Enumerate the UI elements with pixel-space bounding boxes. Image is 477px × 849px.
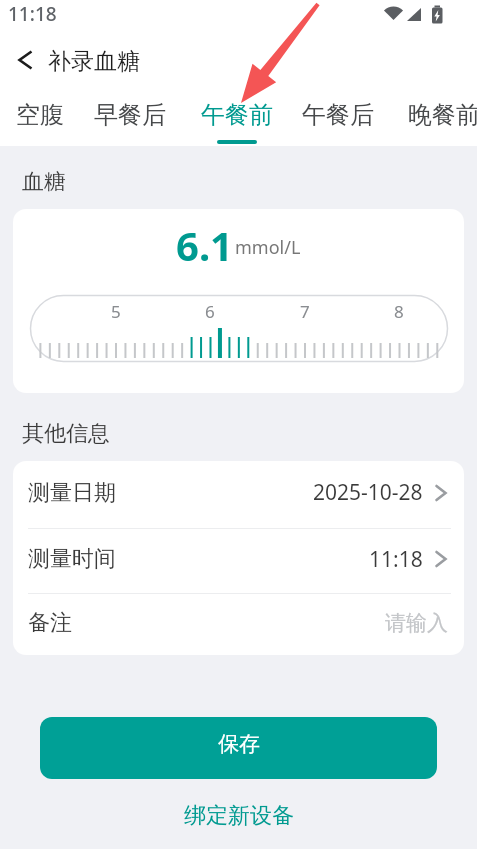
staticText: 午餐后: [302, 100, 374, 130]
staticText: 早餐后: [94, 100, 166, 130]
staticText: mmol/L: [235, 235, 301, 260]
staticText: 6.1: [176, 218, 233, 272]
staticText: 空腹: [16, 100, 64, 130]
staticText: 请输入: [385, 610, 448, 636]
staticText: 绑定新设备: [184, 802, 294, 830]
staticText: 晚餐前: [408, 100, 477, 130]
staticText: 8: [394, 300, 404, 323]
staticText: 午餐前: [201, 100, 273, 130]
staticText: 7: [300, 300, 310, 323]
staticText: 补录血糖: [48, 47, 140, 76]
staticText: 11:18: [369, 545, 423, 574]
staticText: 6: [205, 300, 215, 323]
staticText: 保存: [218, 731, 260, 757]
staticText: 11:18: [8, 1, 57, 27]
staticText: 测量时间: [28, 545, 116, 573]
staticText: 测量日期: [28, 479, 116, 507]
staticText: 备注: [28, 609, 72, 637]
staticText: 其他信息: [22, 420, 110, 448]
staticText: 5: [111, 300, 121, 323]
staticText: 2025-10-28: [313, 478, 423, 507]
staticText: 血糖: [22, 168, 66, 196]
